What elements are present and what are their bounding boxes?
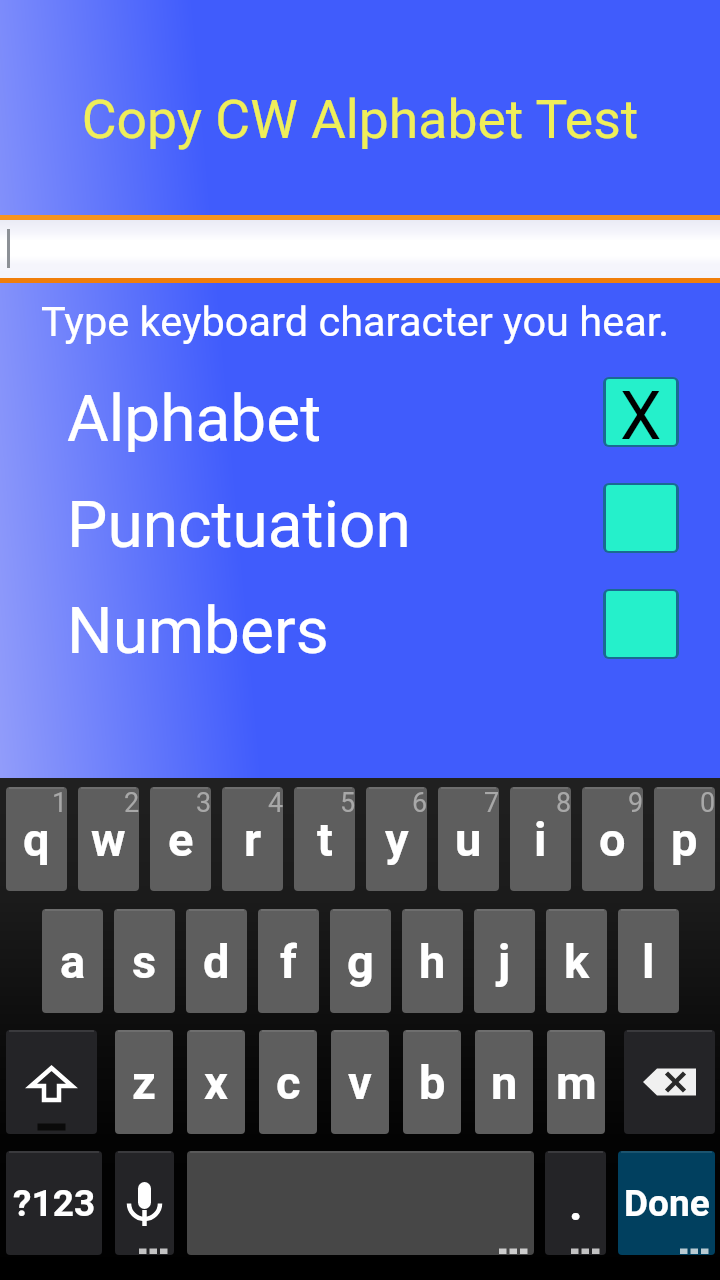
staticText: b xyxy=(419,1055,446,1110)
button[interactable]: m xyxy=(547,1030,605,1134)
staticText: 5 xyxy=(340,787,355,819)
staticText: l xyxy=(642,934,655,989)
staticText: 7 xyxy=(484,787,499,819)
staticText: 0 xyxy=(700,787,715,819)
staticText: o xyxy=(599,812,626,867)
staticText: 4 xyxy=(268,787,283,819)
staticText: Done xyxy=(624,1182,710,1225)
button[interactable]: n xyxy=(475,1030,533,1134)
staticText: h xyxy=(419,934,446,989)
button[interactable]: y xyxy=(366,787,427,891)
staticText: c xyxy=(276,1055,301,1110)
button[interactable]: z xyxy=(115,1030,173,1134)
staticText: v xyxy=(348,1055,372,1110)
staticText: 6 xyxy=(412,787,427,819)
staticText: z xyxy=(132,1055,156,1110)
button[interactable]: q xyxy=(6,787,67,891)
staticText: i xyxy=(534,812,547,867)
staticText: u xyxy=(455,812,482,867)
button[interactable]: t xyxy=(294,787,355,891)
staticText: r xyxy=(244,812,262,867)
button[interactable]: j xyxy=(474,909,535,1013)
button[interactable]: Alphabet xyxy=(67,382,322,452)
staticText: s xyxy=(132,934,157,989)
button[interactable]: i xyxy=(510,787,571,891)
button[interactable]: b xyxy=(403,1030,461,1134)
button[interactable]: d xyxy=(186,909,247,1013)
button[interactable]: Numbers xyxy=(67,594,329,664)
staticText: j xyxy=(498,934,511,989)
button[interactable]: Alphabet checkbox xyxy=(603,377,679,447)
staticText: Type keyboard character you hear. xyxy=(41,297,670,346)
button[interactable]: p xyxy=(654,787,715,891)
button[interactable]: Punctuation checkbox xyxy=(603,483,679,553)
staticText: e xyxy=(168,812,194,867)
button[interactable]: Punctuation xyxy=(67,488,411,558)
button[interactable]: h xyxy=(402,909,463,1013)
staticText: 2 xyxy=(124,787,139,819)
button[interactable]: . xyxy=(545,1151,606,1255)
button[interactable]: voice input xyxy=(115,1151,174,1255)
button[interactable]: Done xyxy=(618,1151,715,1255)
staticText: m xyxy=(556,1055,597,1110)
button[interactable]: a xyxy=(42,909,103,1013)
staticText: 9 xyxy=(628,787,643,819)
button[interactable]: x xyxy=(187,1030,245,1134)
button[interactable]: backspace xyxy=(624,1030,715,1134)
staticText: X xyxy=(620,378,662,447)
button[interactable]: o xyxy=(582,787,643,891)
staticText: f xyxy=(280,934,297,989)
button[interactable]: v xyxy=(331,1030,389,1134)
staticText: k xyxy=(564,934,590,989)
staticText: x xyxy=(204,1055,228,1110)
staticText: n xyxy=(491,1055,518,1110)
button[interactable] xyxy=(0,220,720,278)
button[interactable]: r xyxy=(222,787,283,891)
staticText: Copy CW Alphabet Test xyxy=(0,88,720,151)
staticText: w xyxy=(91,812,126,867)
staticText: q xyxy=(23,812,50,867)
button[interactable]: l xyxy=(618,909,679,1013)
button[interactable]: e xyxy=(150,787,211,891)
button[interactable]: w xyxy=(78,787,139,891)
staticText: 1 xyxy=(52,787,67,819)
button[interactable]: space xyxy=(187,1151,534,1255)
staticText: g xyxy=(347,934,374,989)
staticText: ?123 xyxy=(13,1182,96,1225)
button[interactable]: c xyxy=(259,1030,317,1134)
staticText: y xyxy=(385,812,409,867)
staticText: 8 xyxy=(556,787,571,819)
button[interactable]: g xyxy=(330,909,391,1013)
button[interactable]: Numbers checkbox xyxy=(603,589,679,659)
staticText: . xyxy=(569,1176,583,1231)
button[interactable]: shift xyxy=(6,1030,97,1134)
staticText: a xyxy=(60,934,86,989)
button[interactable]: u xyxy=(438,787,499,891)
button[interactable]: k xyxy=(546,909,607,1013)
button[interactable]: s xyxy=(114,909,175,1013)
staticText: p xyxy=(671,812,698,867)
button[interactable]: f xyxy=(258,909,319,1013)
button[interactable]: ?123 xyxy=(6,1151,102,1255)
staticText: t xyxy=(317,812,333,867)
staticText: 3 xyxy=(196,787,211,819)
staticText: d xyxy=(203,934,230,989)
